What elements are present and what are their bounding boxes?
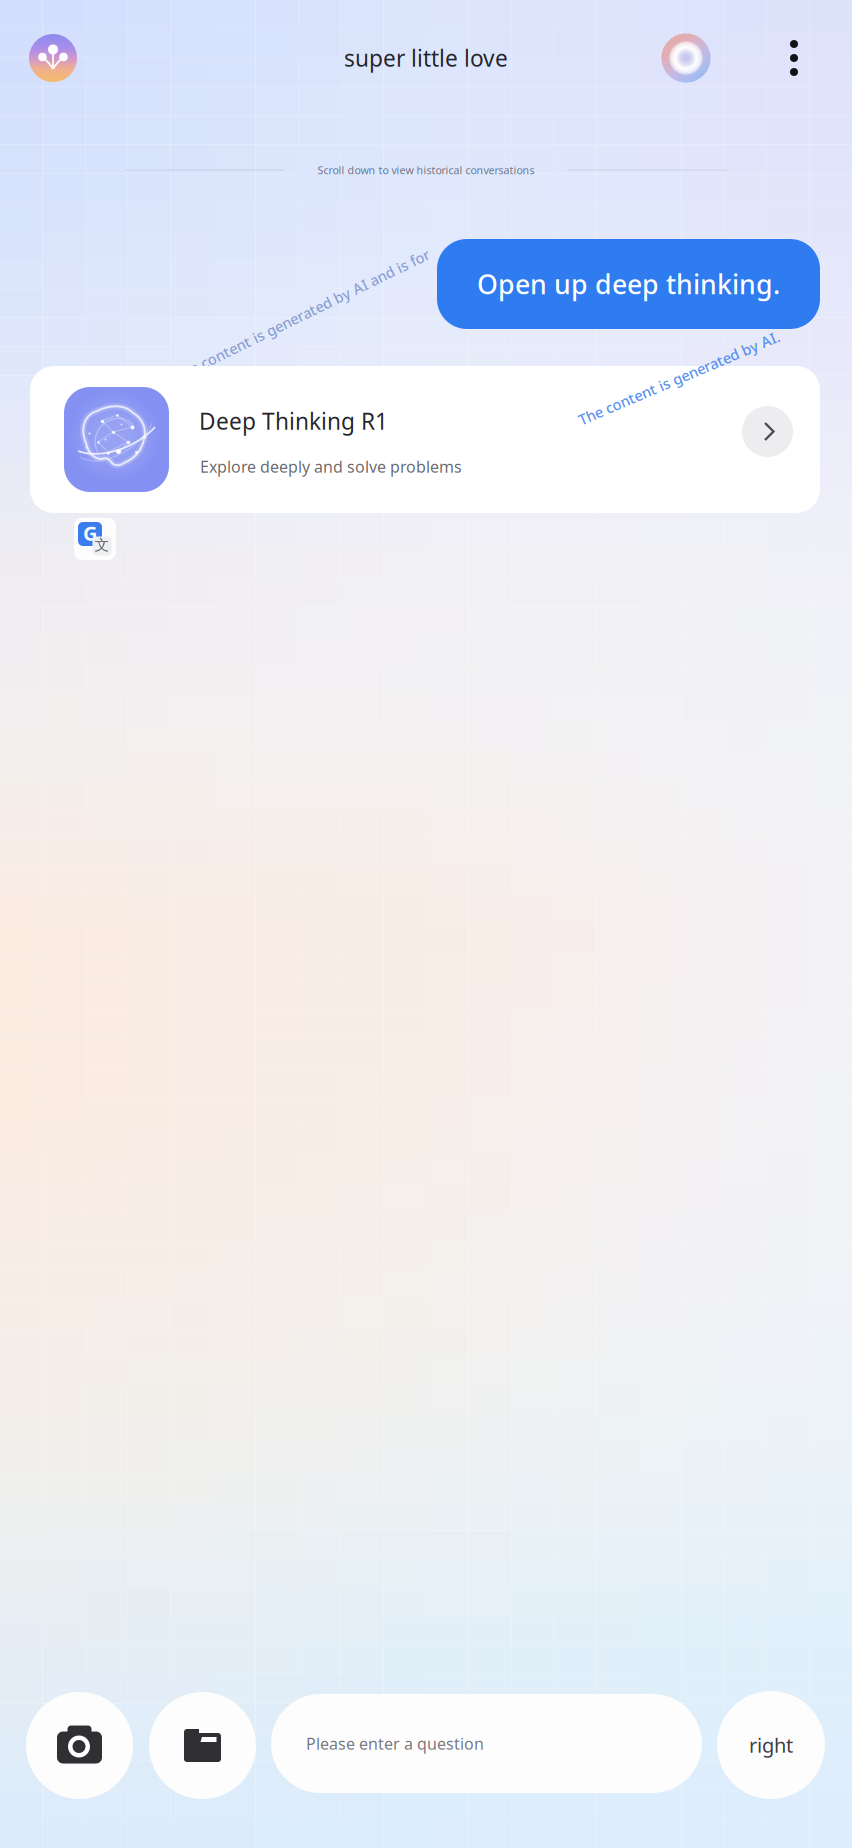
staticText: The content is generated by AI and is fo… [161, 305, 443, 325]
staticText: 文 [94, 536, 109, 554]
staticText: Deep Thinking R1 [199, 406, 388, 436]
staticText: Explore deeply and solve problems [200, 456, 462, 477]
button[interactable]: Please enter a question [271, 1694, 702, 1793]
staticText: Open up deep thinking. [477, 266, 780, 302]
staticText: Scroll down to view historical conversat… [317, 163, 534, 177]
button[interactable]: Camera [26, 1692, 133, 1799]
staticText: Please enter a question [306, 1733, 484, 1754]
button[interactable]: right [717, 1691, 825, 1799]
staticText: right [749, 1732, 793, 1758]
button[interactable]: Assistant [17, 22, 89, 94]
button[interactable]: Voice mode [650, 22, 722, 94]
button[interactable]: More options [762, 22, 826, 94]
button[interactable]: Files [149, 1692, 256, 1799]
staticText: The content is generated by AI. [570, 368, 787, 388]
staticText: G [83, 520, 97, 546]
staticText: super little love [344, 43, 508, 73]
